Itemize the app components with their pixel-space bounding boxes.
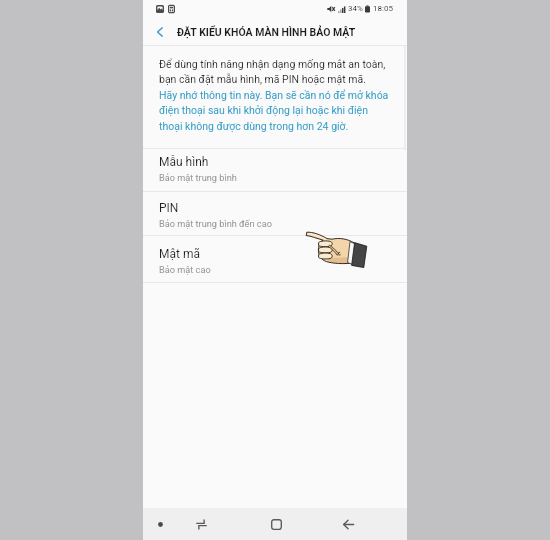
button[interactable]: Mật mã [143, 238, 407, 284]
staticText: ĐẶT KIỂU KHÓA MÀN HÌNH BẢO MẬT [177, 26, 356, 38]
button[interactable]: Recent apps [187, 508, 215, 540]
button[interactable]: Navigate up [143, 18, 177, 45]
staticText: Mật mã [159, 247, 200, 261]
staticText: Bảo mật trung bình đến cao [159, 218, 272, 229]
staticText: 34% [348, 4, 363, 13]
button[interactable]: PIN [143, 193, 407, 236]
button[interactable]: Show navigation bar [148, 508, 172, 540]
staticText: Bảo mật trung bình [159, 172, 237, 183]
staticText: Hãy nhớ thông tin này. Bạn sẽ cần nó để … [159, 89, 391, 133]
button[interactable]: Back [334, 508, 362, 540]
button[interactable]: Home [262, 508, 290, 540]
staticText: Mẫu hình [159, 155, 209, 169]
staticText: 18:05 [373, 4, 393, 13]
button[interactable]: Mẫu hình [143, 148, 407, 190]
staticText: PIN [159, 201, 179, 215]
staticText: Bảo mật cao [159, 264, 211, 275]
staticText: Để dùng tính năng nhận dạng mống mắt an … [159, 58, 391, 86]
